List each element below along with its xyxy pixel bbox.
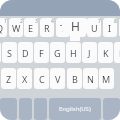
button[interactable]: S (2, 42, 17, 63)
button[interactable]: H (66, 42, 81, 63)
button[interactable]: Emoji (0, 98, 17, 120)
staticText: T (60, 22, 66, 34)
button[interactable]: Q (0, 18, 7, 37)
button[interactable]: E (24, 18, 38, 37)
staticText: S (7, 47, 12, 59)
staticText: Q (0, 22, 4, 34)
staticText: Z (6, 73, 12, 85)
staticText: R (44, 22, 50, 34)
staticText: K (103, 47, 109, 59)
button[interactable]: V (50, 68, 65, 89)
staticText: U (91, 22, 98, 34)
staticText: H (71, 18, 80, 34)
staticText: I (108, 22, 112, 34)
button[interactable]: M (99, 68, 114, 89)
staticText: V (55, 73, 61, 85)
button[interactable]: More (103, 98, 120, 120)
button[interactable]: J (82, 42, 97, 63)
button[interactable]: W (9, 18, 23, 37)
staticText: 4 (51, 18, 54, 25)
staticText: N (87, 73, 94, 85)
button[interactable]: Z (1, 68, 16, 89)
button[interactable]: Y (72, 18, 86, 37)
staticText: 3 (35, 18, 38, 25)
staticText: Y (76, 22, 82, 34)
staticText: G (54, 47, 61, 59)
staticText: D (22, 47, 29, 59)
staticText: 8 (114, 18, 117, 25)
staticText: 1 (4, 18, 7, 25)
staticText: E (28, 22, 34, 34)
staticText: F (39, 47, 44, 59)
button[interactable]: T (56, 18, 70, 37)
staticText: B (72, 73, 78, 85)
button[interactable]: G (50, 42, 65, 63)
button[interactable]: D (18, 42, 33, 63)
staticText: X (22, 73, 28, 85)
button[interactable]: U (87, 18, 101, 37)
button[interactable]: L (114, 42, 120, 63)
button[interactable]: O (119, 18, 120, 37)
staticText: 2 (20, 18, 23, 25)
staticText: C (39, 73, 45, 85)
staticText: W (12, 22, 21, 34)
staticText: English(US) (59, 105, 91, 113)
button[interactable]: Language (34, 98, 47, 120)
staticText: 7 (98, 18, 101, 25)
button[interactable]: B (67, 68, 82, 89)
staticText: M (102, 73, 111, 85)
staticText: J (88, 47, 91, 59)
button[interactable]: Symbols (19, 98, 32, 120)
button[interactable]: K (98, 42, 113, 63)
button[interactable]: F (34, 42, 49, 63)
button[interactable]: English(US) (49, 98, 101, 120)
button[interactable]: N (83, 68, 98, 89)
button[interactable]: A (0, 42, 1, 63)
staticText: L (119, 47, 120, 59)
button[interactable]: X (17, 68, 32, 89)
staticText: H (70, 47, 77, 59)
button[interactable]: R (40, 18, 54, 37)
button[interactable]: I (103, 18, 117, 37)
button[interactable]: C (34, 68, 49, 89)
